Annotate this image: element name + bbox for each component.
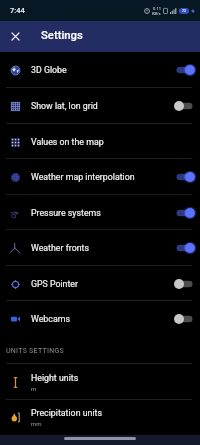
button[interactable]: Height units xyxy=(0,364,200,400)
staticText: Settings xyxy=(41,29,83,42)
staticText: KB/s xyxy=(152,11,161,16)
button[interactable]: Precipitation units xyxy=(0,400,200,435)
staticText: 7:44 xyxy=(10,6,25,15)
button[interactable]: Show lat, lon grid xyxy=(0,88,200,124)
staticText: Pressure systems xyxy=(31,208,174,218)
staticText: 72 xyxy=(182,9,187,13)
button[interactable]: Values on the map xyxy=(0,124,200,159)
staticText: m xyxy=(31,385,37,392)
button[interactable]: GPS Pointer xyxy=(0,266,200,301)
button[interactable]: Webcams xyxy=(0,301,200,336)
button[interactable]: Pressure systems xyxy=(0,195,200,230)
button[interactable]: Weather map interpolation xyxy=(0,159,200,195)
staticText: Weather fronts xyxy=(31,243,174,253)
staticText: mm xyxy=(31,420,42,427)
staticText: Weather map interpolation xyxy=(31,172,174,182)
staticText: Show lat, lon grid xyxy=(31,101,174,111)
button[interactable]: 3D Globe xyxy=(0,52,200,88)
staticText: Values on the map xyxy=(31,137,195,147)
button[interactable]: Close xyxy=(3,24,28,49)
staticText: Height units xyxy=(31,373,79,383)
button[interactable]: Weather fronts xyxy=(0,230,200,266)
staticText: Webcams xyxy=(31,314,174,324)
staticText: 3D Globe xyxy=(31,65,174,75)
staticText: 0.11 xyxy=(153,6,161,11)
staticText: UNITS SETTINGS xyxy=(6,347,64,355)
staticText: Precipitation units xyxy=(31,408,102,418)
staticText: GPS Pointer xyxy=(31,279,174,289)
